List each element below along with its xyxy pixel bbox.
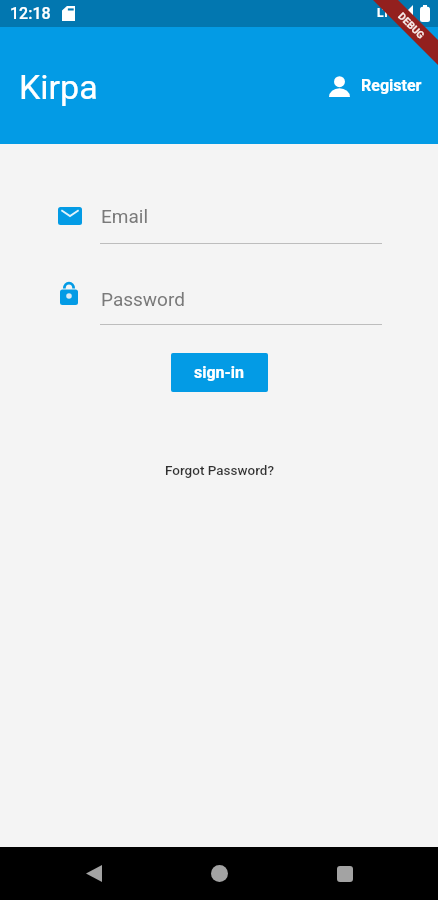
button[interactable]: Register <box>321 68 432 105</box>
staticText: Register <box>361 76 422 95</box>
staticText: Kirpa <box>19 67 98 107</box>
button[interactable]: Recent apps <box>313 847 377 900</box>
button[interactable]: Forgot Password? <box>157 458 282 482</box>
staticText: Password <box>101 288 185 310</box>
staticText: Email <box>101 205 149 227</box>
staticText: Forgot Password? <box>165 462 274 478</box>
staticText: sign-in <box>194 363 245 382</box>
staticText: DEBUG <box>395 10 426 41</box>
staticText: LTE <box>377 6 397 20</box>
button[interactable]: Home <box>187 847 251 900</box>
button[interactable]: Back <box>62 847 126 900</box>
staticText: 12:18 <box>10 4 51 23</box>
button[interactable]: sign-in <box>171 353 268 392</box>
